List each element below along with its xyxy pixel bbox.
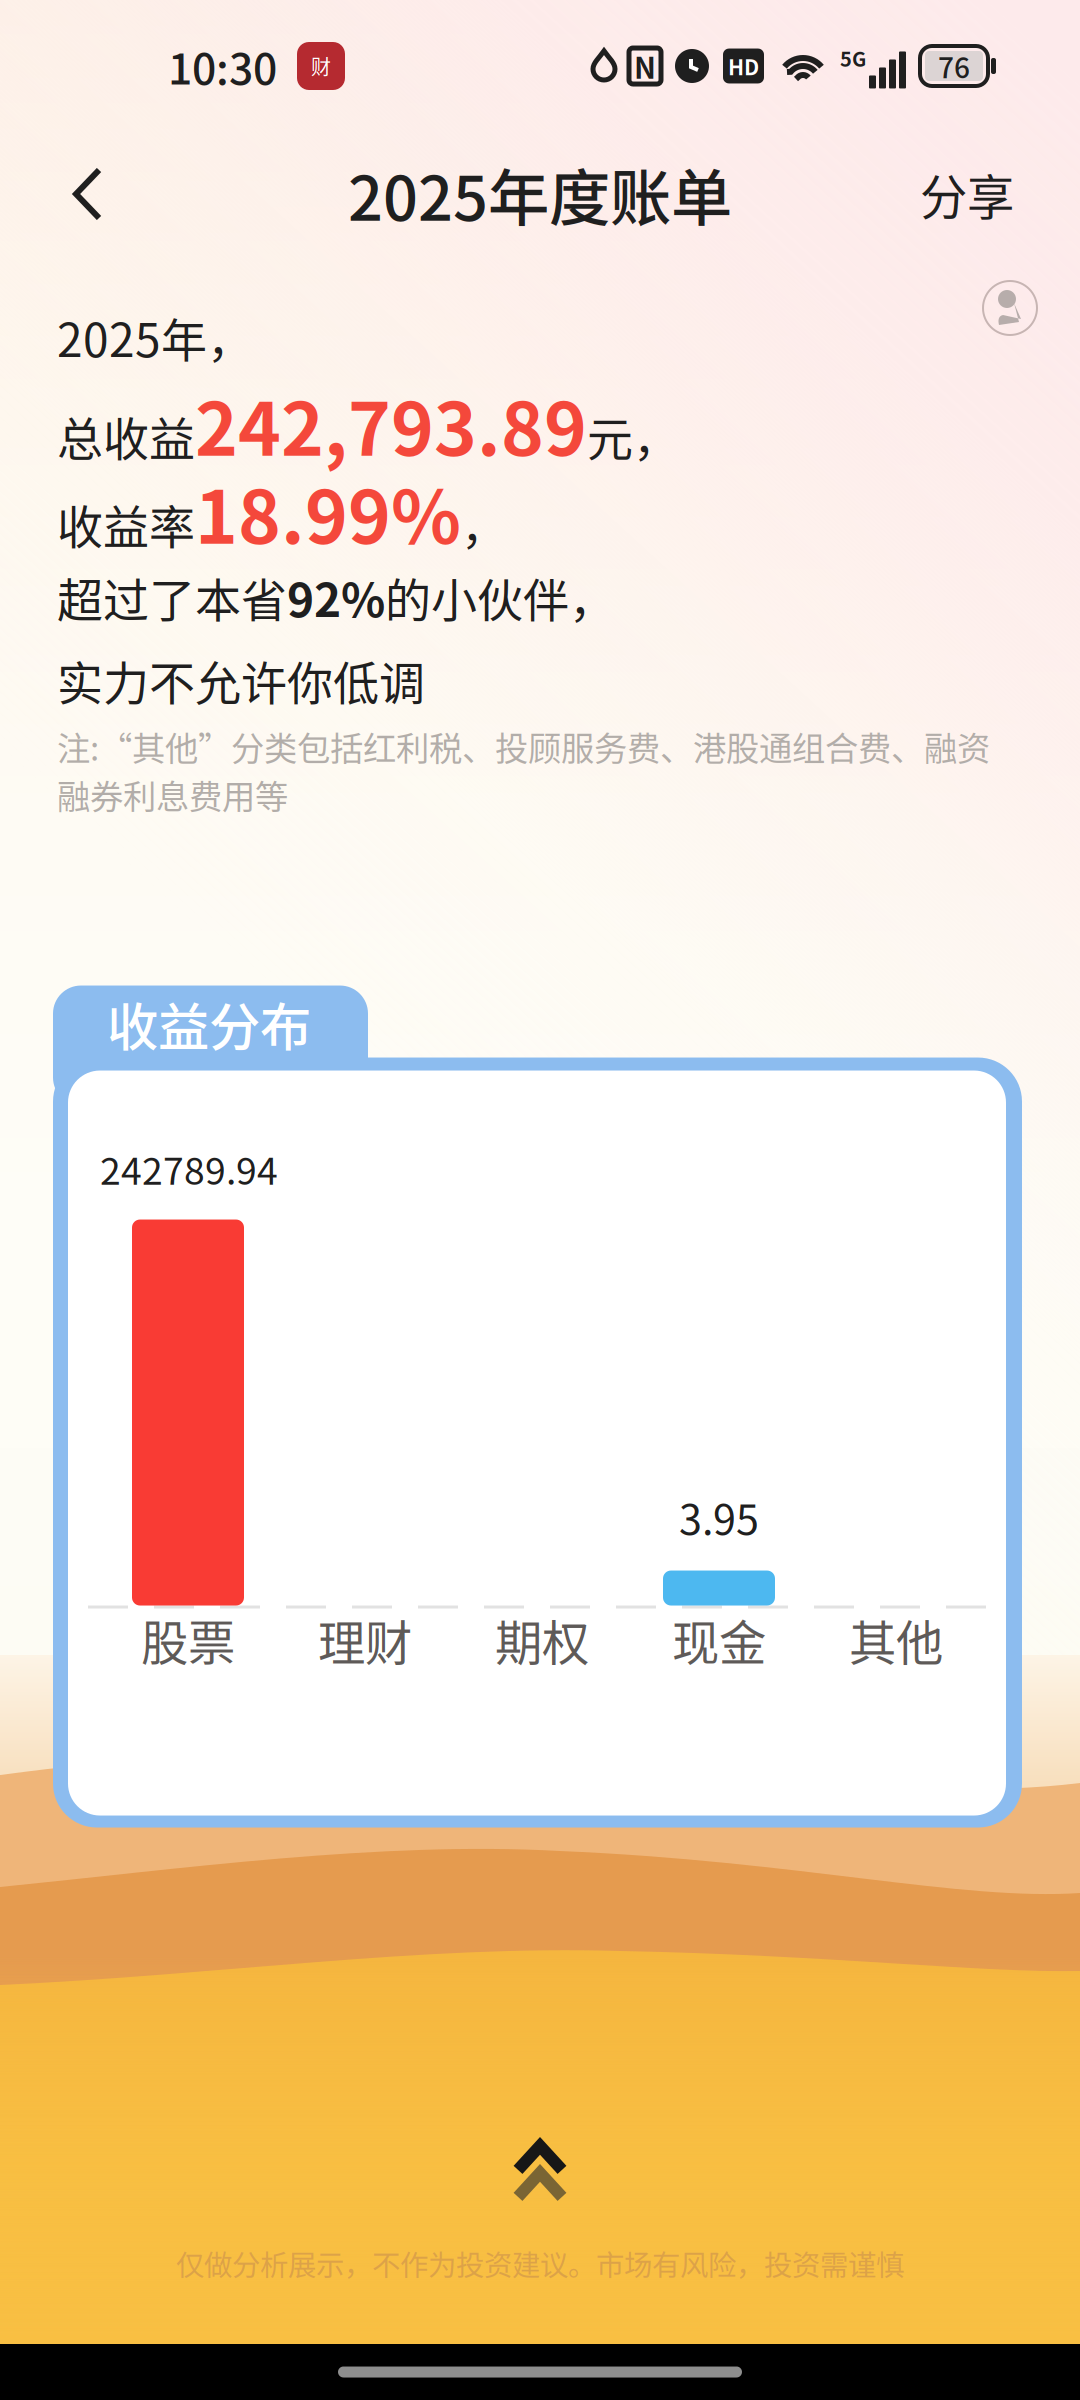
staticText: 92% bbox=[287, 564, 385, 630]
staticText: 注:“其他”分类包括红利税、投顾服务费、港股通组合费、融资融券利息费用等 bbox=[57, 722, 990, 818]
staticText: 2025年， bbox=[57, 304, 253, 370]
staticText: HD bbox=[728, 51, 759, 81]
staticText: 3.95 bbox=[679, 1486, 759, 1546]
staticText: 元， bbox=[587, 402, 679, 469]
staticText: 理财 bbox=[318, 1605, 412, 1674]
staticText: 实力不允许你低调 bbox=[57, 647, 425, 713]
staticText: 股票 bbox=[141, 1605, 235, 1674]
staticText: 其他 bbox=[849, 1605, 943, 1674]
staticText: 仅做分析展示，不作为投资建议。市场有风险，投资需谨慎 bbox=[176, 2243, 904, 2284]
staticText: 10:30 bbox=[168, 35, 277, 97]
staticText: 5G bbox=[840, 43, 866, 72]
staticText: 76 bbox=[938, 46, 970, 86]
staticText: 242,793.89 bbox=[195, 371, 587, 477]
staticText: 超过了本省 bbox=[57, 564, 287, 630]
staticText: 现金 bbox=[672, 1605, 766, 1674]
staticText: 2025年度账单 bbox=[348, 150, 732, 238]
staticText: 的小伙伴， bbox=[385, 564, 615, 630]
button[interactable]: 分享 bbox=[890, 138, 1044, 250]
staticText: 18.99% bbox=[195, 459, 461, 565]
staticText: 财 bbox=[311, 51, 331, 80]
staticText: 收益分布 bbox=[107, 986, 311, 1061]
staticText: 242789.94 bbox=[100, 1141, 278, 1196]
staticText: ， bbox=[461, 490, 507, 557]
staticText: 总收益 bbox=[57, 402, 195, 469]
staticText: 收益率 bbox=[57, 490, 195, 557]
staticText: 期权 bbox=[495, 1605, 589, 1674]
staticText: N bbox=[634, 45, 656, 87]
button[interactable]: 返回 bbox=[36, 140, 138, 248]
staticText: 分享 bbox=[920, 160, 1014, 228]
button[interactable]: 客服 bbox=[982, 280, 1038, 336]
